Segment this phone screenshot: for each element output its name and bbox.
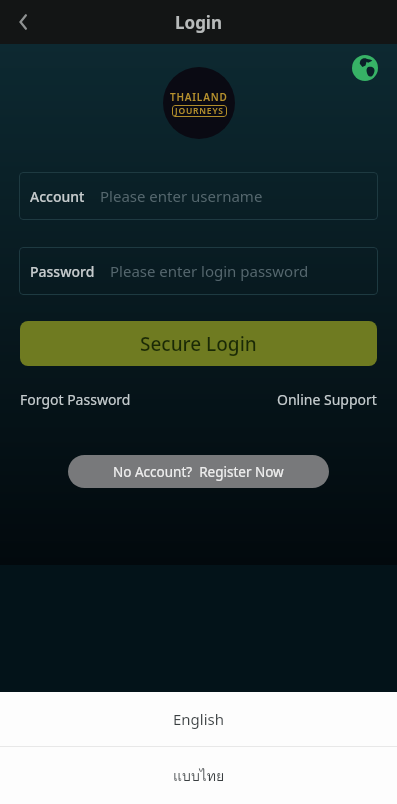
button[interactable]: Account	[19, 172, 378, 220]
button[interactable]	[8, 6, 40, 38]
staticText: Please enter login password	[110, 261, 309, 281]
button[interactable]	[352, 55, 378, 81]
staticText: English	[173, 709, 225, 729]
staticText: แบบไทย	[173, 765, 225, 787]
button[interactable]: English	[0, 692, 397, 746]
button[interactable]: Forgot Password	[20, 390, 131, 409]
staticText: Login	[175, 11, 223, 34]
button[interactable]: Secure Login	[20, 321, 377, 366]
button[interactable]: Password	[19, 247, 378, 295]
staticText: No Account? Register Now	[113, 463, 284, 481]
staticText: Please enter username	[100, 186, 263, 206]
staticText: Account	[30, 187, 85, 206]
button[interactable]: Online Support	[277, 390, 377, 409]
staticText: Secure Login	[140, 331, 257, 357]
button[interactable]: No Account? Register Now	[68, 455, 329, 488]
staticText: JOURNEYS	[175, 105, 224, 117]
button[interactable]: แบบไทย	[0, 747, 397, 804]
staticText: THAILAND	[170, 90, 228, 104]
staticText: Password	[30, 262, 95, 281]
